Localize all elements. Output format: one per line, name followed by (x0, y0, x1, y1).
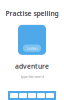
staticText: Listen (27, 45, 37, 51)
staticText: adventure (15, 62, 49, 71)
button[interactable]: Listen (23, 44, 41, 52)
staticText: Practise spelling (5, 9, 58, 18)
staticText: type the word (20, 74, 43, 79)
